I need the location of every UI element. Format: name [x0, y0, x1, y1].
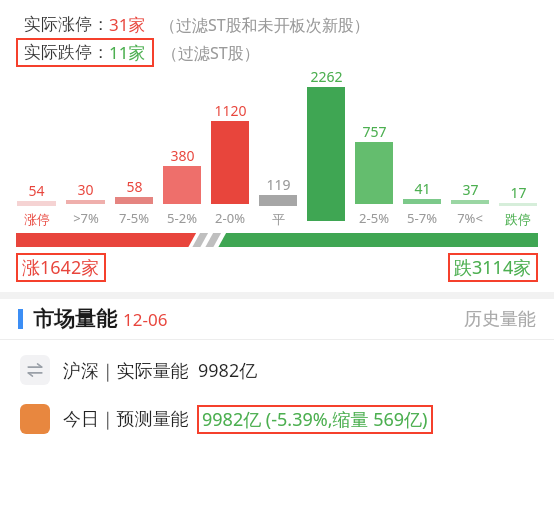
staticText: 11家 [109, 41, 146, 64]
staticText: 757 [362, 122, 387, 141]
staticText: >7% [73, 209, 99, 227]
staticText: 涨1642家 [22, 255, 100, 280]
staticText: 9982亿 (-5.39%,缩量 569亿) [202, 407, 428, 432]
staticText: （过滤ST股和未开板次新股） [160, 14, 370, 36]
staticText: 2-5% [359, 209, 389, 227]
staticText: 17 [510, 183, 527, 202]
staticText: 跌停 [505, 211, 531, 227]
staticText: 54 [28, 181, 45, 200]
staticText: 2262 [310, 67, 343, 86]
staticText: 58 [126, 177, 143, 196]
staticText: 1120 [214, 101, 247, 120]
button[interactable]: 今日 [0, 398, 554, 440]
staticText: 30 [77, 180, 94, 199]
staticText: 37 [462, 180, 479, 199]
staticText: （过滤ST股） [162, 42, 260, 64]
button[interactable]: 涨1642家 [16, 253, 106, 282]
button[interactable]: 沪深 [0, 350, 554, 390]
staticText: 7-5% [119, 209, 149, 227]
staticText: 平 [272, 211, 285, 227]
staticText: 12-06 [123, 308, 168, 331]
staticText: 跌3114家 [454, 255, 532, 280]
staticText: 31家 [109, 13, 146, 36]
staticText: 今日｜预测量能 [63, 408, 189, 431]
staticText: 实际涨停： [24, 14, 109, 35]
staticText: 市场量能 [33, 306, 117, 332]
staticText: 沪深｜实际量能 9982亿 [63, 358, 258, 383]
staticText: 41 [414, 179, 431, 198]
staticText: 7%< [457, 209, 483, 227]
button[interactable]: 市场量能 [0, 299, 554, 339]
staticText: 5-2% [167, 209, 197, 227]
staticText: 380 [170, 146, 195, 165]
staticText: 实际跌停： [24, 42, 109, 63]
staticText: 历史量能 [464, 308, 536, 331]
staticText: 5-7% [407, 209, 437, 227]
button[interactable]: 跌3114家 [448, 253, 538, 282]
other: 沪深 [20, 355, 50, 385]
staticText: 涨停 [24, 211, 50, 227]
staticText: 119 [266, 175, 291, 194]
staticText: 2-0% [215, 209, 245, 227]
other: 今日 [20, 404, 50, 434]
